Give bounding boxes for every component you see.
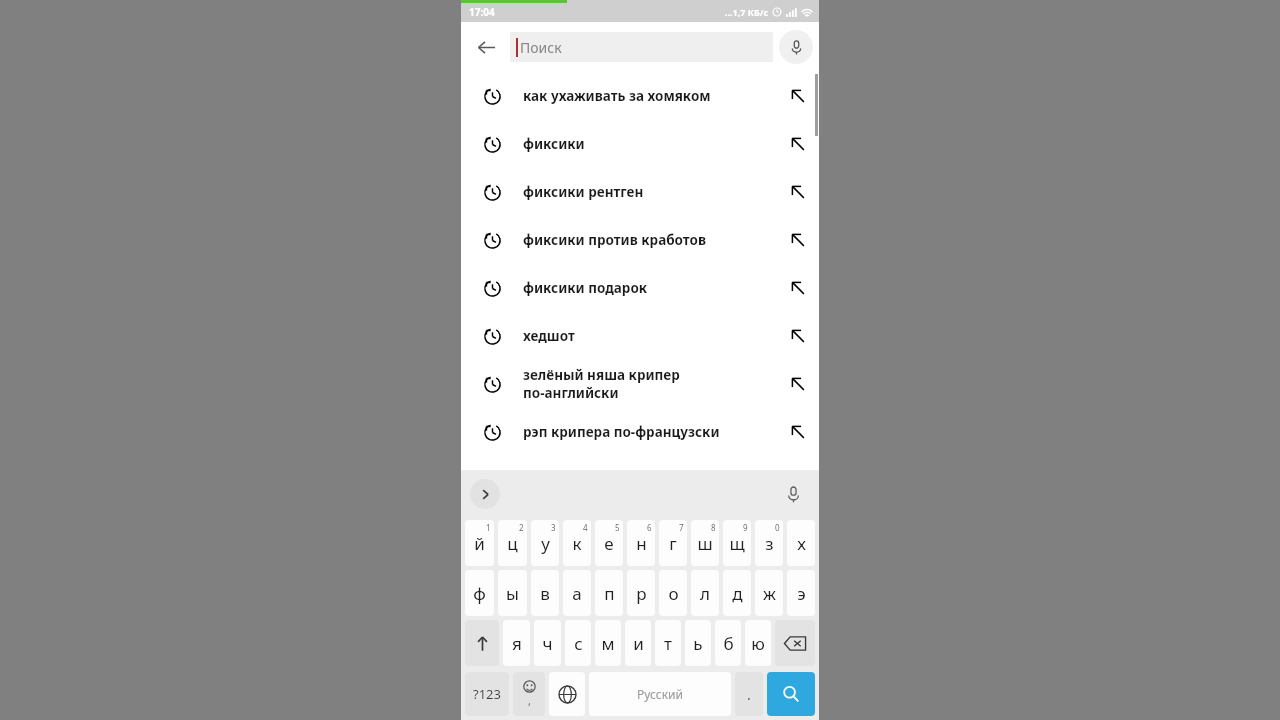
- staticText: ...1,7 КБ/с: [725, 6, 769, 18]
- staticText: ш: [697, 532, 713, 555]
- staticText: я: [512, 632, 522, 655]
- button[interactable]: More suggestions: [470, 479, 500, 509]
- button[interactable]: фиксики подарок: [461, 264, 819, 312]
- button[interactable]: Insert suggestion: [777, 216, 819, 264]
- button[interactable]: Voice input: [779, 480, 807, 508]
- staticText: у: [541, 532, 550, 555]
- staticText: по-английски: [523, 384, 619, 402]
- button[interactable]: фиксики: [461, 120, 819, 168]
- staticText: 0: [775, 522, 780, 533]
- staticText: п: [604, 582, 615, 605]
- staticText: ф: [473, 582, 486, 605]
- button[interactable]: м: [595, 620, 621, 666]
- button[interactable]: Key: [465, 620, 499, 666]
- button[interactable]: Insert suggestion: [777, 360, 819, 408]
- staticText: Поиск: [520, 38, 562, 57]
- button[interactable]: фиксики рентген: [461, 168, 819, 216]
- staticText: ,: [528, 693, 531, 708]
- button[interactable]: х: [787, 520, 815, 566]
- staticText: л: [700, 582, 710, 605]
- staticText: хедшот: [523, 327, 575, 345]
- button[interactable]: Insert suggestion: [777, 168, 819, 216]
- button[interactable]: к: [563, 520, 591, 566]
- button[interactable]: Change language: [549, 672, 585, 716]
- button[interactable]: Insert suggestion: [777, 312, 819, 360]
- button[interactable]: .: [735, 672, 763, 716]
- staticText: 9: [743, 522, 748, 533]
- button[interactable]: Search: [767, 672, 815, 716]
- button[interactable]: д: [723, 570, 751, 616]
- staticText: ч: [542, 632, 553, 655]
- staticText: ж: [763, 582, 776, 605]
- staticText: г: [669, 532, 677, 555]
- button[interactable]: рэп крипера по-французски: [461, 408, 819, 456]
- button[interactable]: т: [655, 620, 681, 666]
- staticText: 4: [583, 522, 588, 533]
- button[interactable]: я: [503, 620, 530, 666]
- staticText: ю: [751, 632, 765, 655]
- button[interactable]: э: [787, 570, 815, 616]
- button[interactable]: ч: [534, 620, 561, 666]
- button[interactable]: в: [531, 570, 559, 616]
- button[interactable]: ь: [685, 620, 711, 666]
- staticText: ?123: [473, 685, 501, 703]
- staticText: щ: [729, 532, 745, 555]
- staticText: й: [474, 532, 485, 555]
- staticText: и: [633, 632, 644, 655]
- button[interactable]: щ: [723, 520, 751, 566]
- staticText: д: [732, 582, 743, 605]
- button[interactable]: з: [755, 520, 783, 566]
- button[interactable]: ?123: [465, 672, 509, 716]
- button[interactable]: е: [595, 520, 623, 566]
- button[interactable]: б: [715, 620, 741, 666]
- staticText: т: [664, 632, 672, 655]
- button[interactable]: Key: [775, 620, 815, 666]
- button[interactable]: хедшот: [461, 312, 819, 360]
- button[interactable]: Voice search: [779, 30, 813, 64]
- staticText: в: [540, 582, 550, 605]
- button[interactable]: как ухаживать за хомяком: [461, 72, 819, 120]
- button[interactable]: ж: [755, 570, 783, 616]
- staticText: з: [765, 532, 774, 555]
- staticText: с: [574, 632, 583, 655]
- button[interactable]: у: [531, 520, 559, 566]
- staticText: рэп крипера по-французски: [523, 423, 720, 441]
- staticText: е: [604, 532, 614, 555]
- staticText: .: [747, 685, 751, 704]
- button[interactable]: г: [659, 520, 687, 566]
- button[interactable]: ю: [745, 620, 771, 666]
- button[interactable]: ы: [498, 570, 527, 616]
- button[interactable]: ф: [465, 570, 494, 616]
- button[interactable]: й: [465, 520, 494, 566]
- button[interactable]: с: [565, 620, 591, 666]
- staticText: фиксики рентген: [523, 183, 644, 201]
- button[interactable]: и: [625, 620, 651, 666]
- staticText: 2: [519, 522, 524, 533]
- staticText: р: [636, 582, 647, 605]
- button[interactable]: Insert suggestion: [777, 264, 819, 312]
- staticText: э: [797, 582, 806, 605]
- button[interactable]: п: [595, 570, 623, 616]
- staticText: б: [723, 632, 734, 655]
- button[interactable]: ш: [691, 520, 719, 566]
- button[interactable]: Emoji and comma: [513, 672, 545, 716]
- button[interactable]: Insert suggestion: [777, 120, 819, 168]
- staticText: ь: [693, 632, 703, 655]
- button[interactable]: Insert suggestion: [777, 72, 819, 120]
- button[interactable]: л: [691, 570, 719, 616]
- staticText: зелёный няша крипер: [523, 366, 680, 384]
- staticText: 7: [679, 522, 684, 533]
- staticText: о: [668, 582, 679, 605]
- button[interactable]: Back: [467, 28, 505, 66]
- button[interactable]: а: [563, 570, 591, 616]
- button[interactable]: Русский: [589, 672, 731, 716]
- button[interactable]: ц: [498, 520, 527, 566]
- button[interactable]: н: [627, 520, 655, 566]
- button[interactable]: р: [627, 570, 655, 616]
- button[interactable]: Insert suggestion: [777, 408, 819, 456]
- button[interactable]: зелёный няша крипер: [461, 360, 819, 408]
- button[interactable]: Поиск: [510, 32, 773, 62]
- staticText: ы: [506, 582, 519, 605]
- button[interactable]: фиксики против кработов: [461, 216, 819, 264]
- button[interactable]: о: [659, 570, 687, 616]
